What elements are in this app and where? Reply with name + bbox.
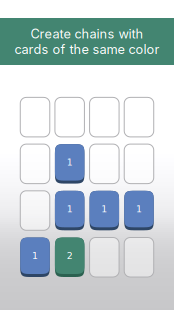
staticText: Create chains with xyxy=(30,26,143,41)
button[interactable] xyxy=(55,97,84,137)
button[interactable]: 1 xyxy=(55,144,84,184)
button[interactable] xyxy=(20,97,50,137)
button[interactable]: 2 xyxy=(55,237,84,277)
staticText: 1 xyxy=(136,204,142,214)
button[interactable] xyxy=(124,144,154,184)
button[interactable] xyxy=(90,237,119,277)
staticText: 2 xyxy=(67,250,73,261)
staticText: 1 xyxy=(101,204,107,214)
staticText: 1 xyxy=(32,250,38,261)
staticText: 1 xyxy=(67,204,73,214)
staticText: cards of the same color xyxy=(14,41,159,57)
button[interactable]: 1 xyxy=(124,191,154,230)
staticText: 1 xyxy=(67,157,73,168)
button[interactable] xyxy=(124,97,154,137)
button[interactable] xyxy=(20,191,50,230)
button[interactable]: 1 xyxy=(20,237,50,277)
button[interactable]: 1 xyxy=(90,191,119,230)
button[interactable] xyxy=(124,237,154,277)
button[interactable]: 1 xyxy=(55,191,84,230)
button[interactable] xyxy=(90,144,119,184)
button[interactable] xyxy=(90,97,119,137)
button[interactable] xyxy=(20,144,50,184)
